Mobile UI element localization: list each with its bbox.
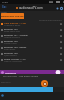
staticText: Subscribe	[5, 71, 16, 74]
staticText: Showing latest episodes	[39, 19, 62, 21]
staticText: ON AIR NOW · Live Radio Stream	[3, 75, 39, 78]
button[interactable]: DOWNLOAD THE APP	[1, 13, 24, 19]
staticText: View 212 episodes	[4, 60, 23, 63]
staticText: Nebula sessions	[4, 36, 20, 39]
staticText: Episode 142	[4, 27, 18, 30]
staticText: audionautTV.com	[19, 6, 43, 10]
staticText: Now Playing — Live	[4, 21, 26, 24]
button[interactable]: Back	[2, 5, 7, 8]
staticText: Episode 140	[4, 39, 18, 42]
button[interactable]: Tabs	[59, 6, 63, 10]
staticText: PREVIOUS	[1, 81, 11, 84]
staticText: Deep space drift	[4, 30, 21, 33]
staticText: Episode 138	[4, 51, 18, 54]
staticText: Back	[2, 5, 7, 8]
staticText: Show Archive — All	[4, 57, 26, 60]
staticText: Episode 139 · Remix	[4, 45, 27, 48]
button[interactable]: Episode 141 · Archive	[0, 33, 64, 39]
button[interactable]: Episode 139 · Remix	[0, 45, 64, 51]
button[interactable]: Subscribe	[0, 70, 64, 74]
button[interactable]: Share	[55, 6, 59, 10]
staticText: Audionaut Radio	[4, 24, 21, 27]
staticText: Orbital noise	[4, 42, 17, 45]
staticText: Episode 141 · Archive	[4, 33, 28, 36]
staticText: DOWNLOAD THE APP	[1, 15, 24, 18]
staticText: Quiet signals	[4, 54, 17, 57]
button[interactable]: Episode 138	[0, 51, 64, 57]
button[interactable]: Now Playing — Live	[0, 21, 64, 27]
button[interactable]: Episode 142	[0, 27, 64, 33]
staticText: 11:24	[2, 1, 8, 4]
staticText: Home	[1, 11, 7, 13]
button[interactable]: Show Archive — All	[0, 57, 64, 63]
button[interactable]: Play	[41, 80, 48, 87]
staticText: Solar winds	[4, 48, 16, 51]
button[interactable]: Episode 140	[0, 39, 64, 45]
